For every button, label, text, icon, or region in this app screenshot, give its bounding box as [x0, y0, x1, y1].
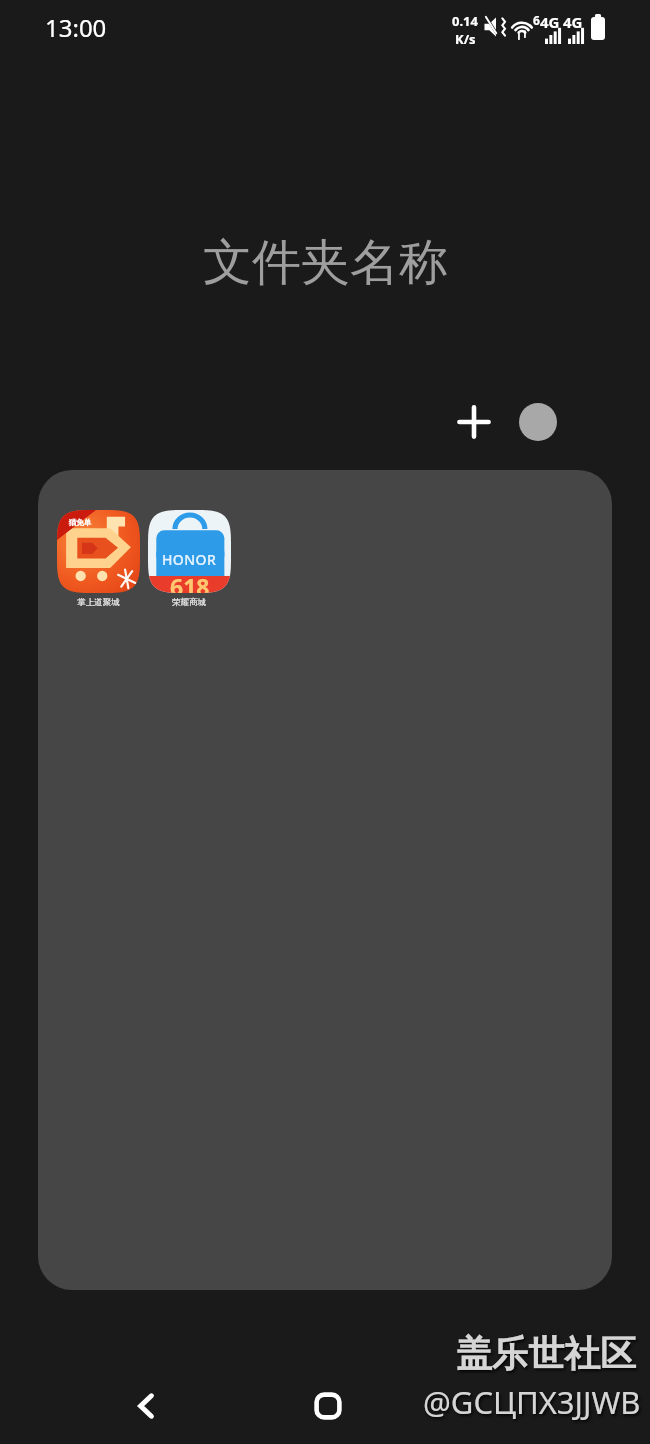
staticText: 4G: [563, 12, 583, 32]
button[interactable]: Profile: [510, 394, 566, 450]
staticText: HONOR: [162, 550, 217, 569]
staticText: 荣耀商城: [172, 597, 206, 608]
button[interactable]: 文件夹名称: [180, 229, 470, 297]
button[interactable]: HONOR: [147, 509, 231, 608]
staticText: 文件夹名称: [203, 232, 448, 294]
staticText: 4G: [540, 12, 560, 32]
button[interactable]: Add: [446, 394, 502, 450]
button[interactable]: 猫免单: [56, 509, 140, 608]
staticText: 13:00: [45, 11, 107, 44]
staticText: 6: [533, 12, 540, 28]
staticText: K/s: [455, 30, 476, 48]
staticText: 盖乐世社区: [456, 1331, 636, 1376]
staticText: @GCЦПX3JJWB: [423, 1381, 641, 1423]
staticText: 掌上道聚城: [77, 597, 120, 608]
staticText: 618: [170, 571, 210, 593]
staticText: 0.14: [452, 12, 478, 30]
button[interactable]: Home: [294, 1378, 362, 1434]
staticText: 猫免单: [61, 518, 99, 527]
button[interactable]: Back: [112, 1378, 180, 1434]
